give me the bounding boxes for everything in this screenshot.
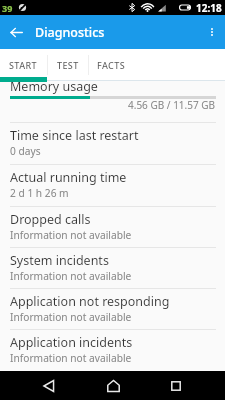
staticText: System incidents [10, 252, 109, 269]
staticText: Dropped calls [10, 211, 91, 228]
staticText: Actual running time [10, 169, 127, 186]
button[interactable]: FACTS [88, 49, 134, 81]
button[interactable]: Application incidents [0, 330, 225, 371]
button[interactable]: More options [199, 15, 225, 49]
staticText: TEST [57, 59, 79, 71]
staticText: Application not responding [10, 293, 170, 310]
button[interactable]: Home [98, 371, 128, 400]
button[interactable]: Dropped calls [0, 207, 225, 248]
button[interactable]: Memory usage [0, 81, 225, 123]
button[interactable]: Navigate up [0, 15, 32, 49]
staticText: FACTS [97, 59, 126, 71]
staticText: Application incidents [10, 334, 133, 351]
staticText: Information not available [10, 269, 132, 283]
button[interactable]: Time since last restart [0, 123, 225, 165]
staticText: Information not available [10, 310, 132, 324]
button[interactable]: Application not responding [0, 289, 225, 330]
button[interactable]: START [0, 49, 47, 81]
button[interactable]: TEST [47, 49, 88, 81]
staticText: Time since last restart [10, 127, 139, 144]
staticText: Memory usage [10, 78, 98, 95]
staticText: Information not available [10, 351, 132, 365]
staticText: Diagnostics [35, 24, 105, 41]
button[interactable]: Actual running time [0, 165, 225, 207]
staticText: 2 d 1 h 26 m [10, 186, 69, 200]
button[interactable]: System incidents [0, 248, 225, 289]
staticText: 12:18 [196, 1, 222, 15]
staticText: 39 [2, 2, 13, 14]
button[interactable]: Recent apps [161, 371, 191, 400]
button[interactable]: Back [34, 371, 64, 400]
staticText: Information not available [10, 228, 132, 242]
staticText: 0 days [10, 144, 41, 158]
staticText: START [9, 59, 38, 71]
staticText: 4.56 GB / 11.57 GB [128, 98, 216, 112]
